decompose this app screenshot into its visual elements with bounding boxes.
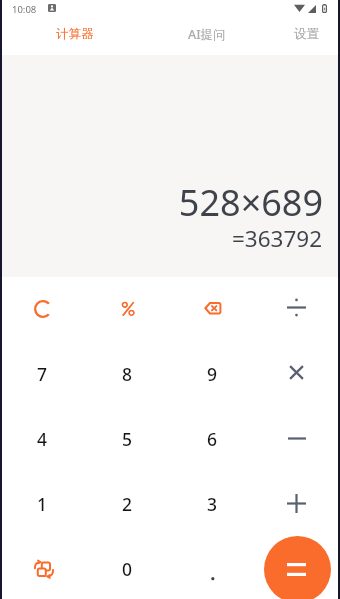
button[interactable]: 6 [170, 406, 255, 471]
staticText: 9 [207, 362, 218, 386]
button[interactable]: Percent [85, 276, 170, 341]
button[interactable]: 计算器 [0, 18, 150, 50]
button[interactable]: Decimal point [170, 536, 255, 599]
button[interactable]: 5 [85, 406, 170, 471]
staticText: 528×689 [178, 178, 323, 227]
staticText: 7 [37, 362, 48, 386]
button[interactable]: Equals [264, 536, 331, 599]
button[interactable]: 7 [0, 341, 85, 406]
button[interactable]: Minus [255, 406, 340, 471]
staticText: AI提问 [188, 26, 226, 43]
button[interactable]: 设置 [263, 18, 340, 50]
staticText: 计算器 [56, 26, 94, 42]
staticText: 6 [207, 427, 218, 451]
staticText: 0 [122, 557, 133, 581]
button[interactable]: Plus [255, 471, 340, 536]
staticText: 5 [122, 427, 133, 451]
button[interactable]: 3 [170, 471, 255, 536]
button[interactable]: Divide [255, 276, 340, 341]
staticText: 4 [37, 427, 48, 451]
button[interactable]: AI提问 [150, 18, 263, 50]
button[interactable]: 8 [85, 341, 170, 406]
button[interactable]: 9 [170, 341, 255, 406]
button[interactable]: Multiply [255, 341, 340, 406]
staticText: =363792 [231, 223, 322, 254]
staticText: 10:08 [12, 3, 37, 16]
button[interactable]: 2 [85, 471, 170, 536]
button[interactable]: 4 [0, 406, 85, 471]
staticText: 8 [122, 362, 133, 386]
staticText: 设置 [294, 26, 319, 42]
button[interactable]: 1 [0, 471, 85, 536]
button[interactable]: Clear [0, 276, 85, 341]
staticText: 3 [207, 492, 218, 516]
staticText: 1 [37, 492, 48, 516]
button[interactable]: 0 [85, 536, 170, 599]
button[interactable]: Unit converter [0, 536, 85, 599]
staticText: 2 [122, 492, 133, 516]
button[interactable]: Backspace [170, 276, 255, 341]
